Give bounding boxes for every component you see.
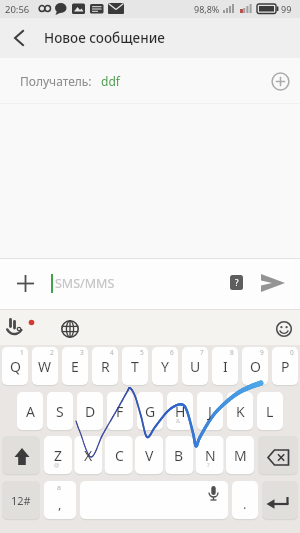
- staticText: U: [190, 357, 201, 376]
- staticText: J: [208, 402, 212, 421]
- button[interactable]: J: [197, 392, 223, 430]
- staticText: S: [56, 402, 64, 421]
- staticText: F: [116, 402, 124, 421]
- button[interactable]: S: [47, 392, 73, 430]
- button[interactable]: N: [196, 436, 224, 474]
- staticText: 5: [140, 348, 144, 357]
- staticText: 3: [80, 348, 84, 357]
- staticText: Новое сообщение: [44, 29, 165, 47]
- staticText: 7: [200, 348, 204, 357]
- staticText: 20:56: [5, 3, 30, 16]
- button[interactable]: [255, 268, 291, 298]
- button[interactable]: [2, 436, 40, 474]
- staticText: M: [234, 446, 247, 465]
- button[interactable]: U: [182, 347, 208, 385]
- button[interactable]: [10, 268, 40, 298]
- staticText: 99: [281, 3, 292, 15]
- button[interactable]: Получатель:: [0, 58, 300, 104]
- staticText: R: [101, 357, 110, 376]
- staticText: I: [223, 357, 228, 376]
- button[interactable]: ,: [44, 485, 76, 523]
- staticText: O: [250, 357, 261, 376]
- button[interactable]: X: [74, 436, 102, 474]
- button[interactable]: [3, 22, 35, 54]
- staticText: 9: [260, 348, 264, 357]
- button[interactable]: T: [122, 347, 148, 385]
- staticText: P: [281, 357, 290, 376]
- staticText: C: [115, 446, 124, 465]
- button[interactable]: P: [272, 347, 298, 385]
- staticText: 98,8%: [194, 3, 220, 15]
- staticText: 8: [230, 348, 234, 357]
- staticText: A: [26, 402, 35, 421]
- staticText: @: [54, 461, 60, 469]
- button[interactable]: H: [167, 392, 193, 430]
- button[interactable]: B: [165, 436, 193, 474]
- staticText: 12#: [11, 493, 31, 508]
- staticText: Получатель:: [20, 73, 92, 89]
- staticText: T: [131, 357, 139, 376]
- button[interactable]: D: [77, 392, 103, 430]
- staticText: 4: [110, 348, 114, 357]
- button[interactable]: [268, 313, 300, 345]
- staticText: ddf: [101, 73, 120, 89]
- staticText: SMS/MMS: [55, 275, 115, 292]
- staticText: L: [266, 402, 274, 421]
- button[interactable]: R: [92, 347, 118, 385]
- staticText: Z: [54, 446, 63, 465]
- staticText: ?: [207, 461, 210, 469]
- button[interactable]: M: [226, 436, 254, 474]
- button[interactable]: E: [62, 347, 88, 385]
- button[interactable]: [262, 481, 298, 519]
- button[interactable]: L: [257, 392, 283, 430]
- staticText: W: [38, 357, 52, 376]
- button[interactable]: A: [17, 392, 43, 430]
- staticText: N: [205, 446, 216, 465]
- staticText: .: [243, 495, 247, 513]
- staticText: V: [145, 446, 154, 465]
- button[interactable]: 12#: [2, 481, 40, 519]
- button[interactable]: G: [137, 392, 163, 430]
- staticText: 6: [170, 348, 174, 357]
- button[interactable]: C: [105, 436, 133, 474]
- staticText: 0: [290, 348, 294, 357]
- button[interactable]: O: [242, 347, 268, 385]
- button[interactable]: Y: [152, 347, 178, 385]
- staticText: &: [176, 417, 181, 425]
- button[interactable]: [80, 481, 228, 519]
- button[interactable]: I: [212, 347, 238, 385]
- button[interactable]: .: [232, 485, 258, 523]
- button[interactable]: [2, 313, 40, 345]
- button[interactable]: W: [32, 347, 58, 385]
- staticText: B: [174, 446, 184, 465]
- staticText: D: [85, 402, 96, 421]
- button[interactable]: F: [107, 392, 133, 430]
- staticText: ,: [58, 495, 62, 513]
- button[interactable]: Q: [2, 347, 28, 385]
- button[interactable]: [54, 313, 86, 345]
- button[interactable]: Z: [44, 436, 72, 474]
- staticText: E: [71, 357, 79, 376]
- button[interactable]: [258, 436, 298, 474]
- staticText: а: [57, 483, 61, 493]
- staticText: H: [175, 402, 186, 421]
- staticText: Y: [161, 357, 169, 376]
- staticText: G: [145, 402, 156, 421]
- button[interactable]: K: [227, 392, 253, 430]
- staticText: Q: [10, 357, 21, 376]
- staticText: ?: [235, 277, 239, 288]
- staticText: 1: [20, 348, 24, 357]
- staticText: K: [236, 402, 245, 421]
- staticText: 2: [50, 348, 54, 357]
- button[interactable]: V: [135, 436, 163, 474]
- staticText: X: [84, 446, 93, 465]
